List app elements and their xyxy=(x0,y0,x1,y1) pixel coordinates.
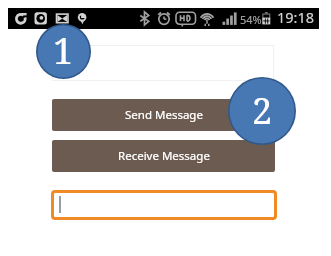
staticText: 19:18 xyxy=(277,7,315,27)
button[interactable]: Receive Message xyxy=(52,140,275,172)
button[interactable]: Send Message xyxy=(52,99,275,131)
staticText: 2 xyxy=(252,86,273,135)
button[interactable] xyxy=(52,45,274,81)
staticText: 54% xyxy=(240,12,262,27)
staticText: Receive Message xyxy=(118,148,210,164)
staticText: Send Message xyxy=(125,107,203,123)
staticText: 1 xyxy=(53,26,74,75)
button[interactable] xyxy=(51,190,277,220)
